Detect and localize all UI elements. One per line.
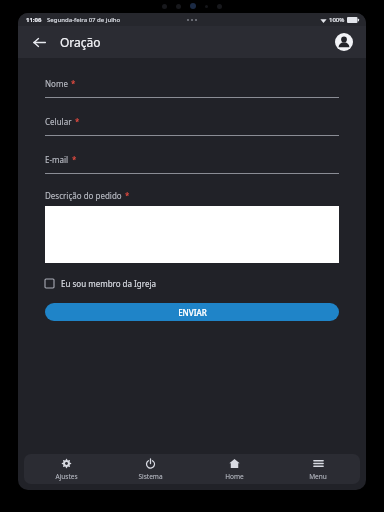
staticText: E-mail <box>45 154 69 165</box>
button[interactable]: Home <box>192 454 276 484</box>
staticText: 100% <box>329 16 345 24</box>
staticText: Oração <box>60 34 101 50</box>
button[interactable]: Celular <box>45 116 339 136</box>
button[interactable]: Sistema <box>108 454 192 484</box>
button[interactable]: ENVIAR <box>45 303 339 321</box>
staticText: Eu sou membro da Igreja <box>61 278 156 289</box>
button[interactable]: Back <box>28 31 50 53</box>
button[interactable]: E-mail <box>45 154 339 174</box>
staticText: Segunda-feira 07 de julho <box>47 16 121 24</box>
staticText: ENVIAR <box>178 307 207 318</box>
staticText: 11:06 <box>26 16 42 24</box>
staticText: * <box>75 116 80 127</box>
staticText: Descrição do pedido <box>45 190 122 201</box>
staticText: Celular <box>45 116 72 127</box>
button[interactable]: Menu <box>276 454 360 484</box>
staticText: Nome <box>45 78 68 89</box>
staticText: Home <box>225 472 244 481</box>
staticText: * <box>125 190 130 201</box>
button[interactable]: Nome <box>45 78 339 98</box>
staticText: Ajustes <box>55 472 78 481</box>
button[interactable]: Account <box>332 30 356 54</box>
staticText: * <box>71 78 76 89</box>
staticText: * <box>72 154 77 165</box>
staticText: Sistema <box>138 472 163 481</box>
button[interactable]: Eu sou membro da Igreja <box>45 276 156 291</box>
staticText: Menu <box>309 472 327 481</box>
button[interactable]: Ajustes <box>24 454 108 484</box>
